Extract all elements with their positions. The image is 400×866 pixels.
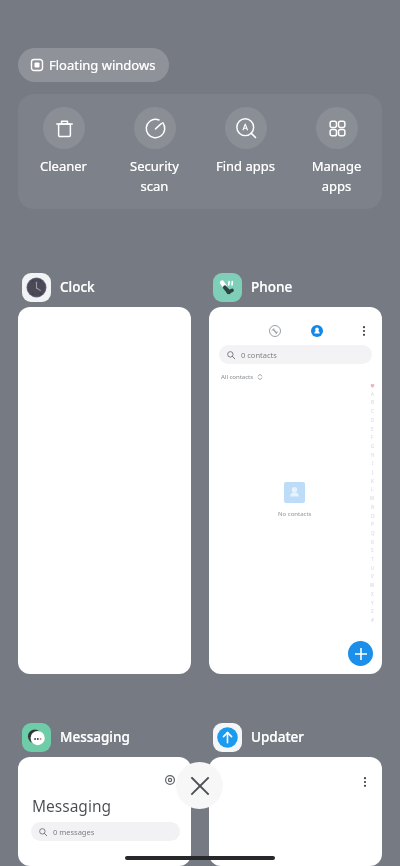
staticText: L [371, 486, 374, 492]
button[interactable]: Search [163, 773, 177, 787]
button[interactable]: Floating windows [18, 48, 169, 82]
staticText: Messaging [60, 728, 130, 746]
button[interactable] [18, 307, 191, 674]
staticText: Cleaner [18, 157, 109, 175]
button[interactable]: Updater [213, 720, 305, 754]
staticText: K [371, 478, 374, 484]
button[interactable]: Recents [266, 322, 284, 340]
button[interactable]: More options [209, 757, 382, 866]
button[interactable]: Messaging [18, 757, 191, 866]
button[interactable]: Security scan [109, 94, 200, 209]
staticText: Q [371, 530, 375, 536]
button[interactable]: Close [176, 762, 223, 809]
staticText: N [371, 504, 375, 510]
button[interactable]: More options [356, 773, 374, 791]
staticText: # [371, 617, 374, 623]
button[interactable]: Contacts [311, 325, 323, 337]
staticText: I [372, 460, 374, 466]
button[interactable]: Manage apps [291, 94, 382, 209]
staticText: F [371, 434, 374, 440]
staticText: X [371, 591, 374, 597]
staticText: O [371, 513, 375, 519]
staticText: Clock [60, 278, 95, 296]
button[interactable]: All contacts [221, 373, 263, 381]
staticText: R [371, 539, 374, 545]
staticText: J [372, 469, 374, 475]
button[interactable]: 0 messages [31, 822, 180, 841]
button[interactable]: Messaging [22, 720, 130, 754]
staticText: B [371, 399, 374, 405]
staticText: 0 messages [53, 827, 95, 837]
staticText: Floating windows [49, 56, 156, 74]
button[interactable]: Cleaner [18, 94, 109, 209]
staticText: Security scan [109, 157, 200, 195]
staticText: Updater [251, 728, 305, 746]
button[interactable]: Recents [209, 307, 382, 674]
button[interactable]: Add contact [348, 641, 373, 666]
staticText: Z [371, 608, 374, 614]
staticText: A [371, 391, 374, 397]
staticText: 0 contacts [241, 350, 277, 360]
button[interactable]: Phone [213, 270, 293, 304]
staticText: G [371, 443, 375, 449]
staticText: V [371, 573, 374, 579]
staticText: Phone [251, 278, 293, 296]
staticText: T [371, 556, 374, 562]
staticText: Y [371, 600, 374, 606]
staticText: P [371, 521, 374, 527]
staticText: C [371, 408, 374, 414]
staticText: W [370, 582, 375, 588]
staticText: Messaging [32, 795, 111, 816]
button[interactable]: More options [356, 323, 372, 339]
staticText: D [371, 417, 375, 423]
staticText: U [371, 565, 375, 571]
button[interactable]: Find apps [200, 94, 291, 209]
staticText: Find apps [200, 157, 291, 175]
button[interactable]: Clock [22, 270, 95, 304]
staticText: E [371, 426, 374, 432]
staticText: M [370, 495, 375, 501]
staticText: All contacts [221, 373, 254, 381]
staticText: Manage apps [291, 157, 382, 195]
staticText: H [371, 452, 375, 458]
button[interactable]: 0 contacts [219, 345, 372, 364]
staticText: S [371, 547, 374, 553]
staticText: No contacts [278, 510, 312, 518]
